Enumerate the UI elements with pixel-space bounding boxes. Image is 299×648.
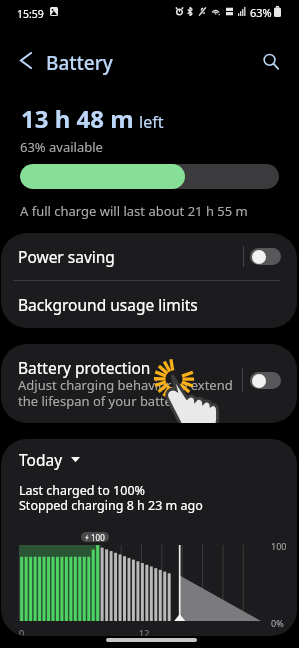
- staticText: 0: [19, 627, 25, 636]
- staticText: Last charged to 100%: [19, 482, 145, 499]
- staticText: 0%: [271, 617, 284, 629]
- staticText: Background usage limits: [18, 294, 198, 315]
- staticText: Adjust charging behavior to extend the l…: [18, 376, 233, 409]
- button[interactable]: Today: [12, 446, 87, 473]
- staticText: Today: [19, 449, 63, 470]
- staticText: 13 h 48 m: [21, 102, 134, 135]
- button[interactable]: Background usage limits: [1, 280, 297, 328]
- button[interactable]: Off: [250, 248, 281, 265]
- staticText: 63%: [250, 5, 272, 20]
- staticText: 15:59: [17, 7, 44, 21]
- staticText: Battery protection: [18, 357, 151, 378]
- button[interactable]: Search: [253, 44, 288, 79]
- button[interactable]: Power saving: [1, 233, 297, 280]
- staticText: 12: [139, 627, 150, 636]
- staticText: left: [139, 111, 164, 133]
- staticText: 100: [91, 532, 105, 542]
- staticText: 100: [271, 540, 287, 552]
- staticText: A full charge will last about 21 h 55 m: [20, 202, 248, 220]
- staticText: Battery: [46, 50, 113, 76]
- staticText: Stopped charging 8 h 23 m ago: [19, 497, 203, 514]
- button[interactable]: Battery protection: [1, 344, 297, 423]
- staticText: Power saving: [18, 246, 243, 267]
- button[interactable]: Off: [250, 372, 281, 389]
- staticText: 63% available: [20, 138, 103, 156]
- button[interactable]: Navigate up: [8, 43, 43, 78]
